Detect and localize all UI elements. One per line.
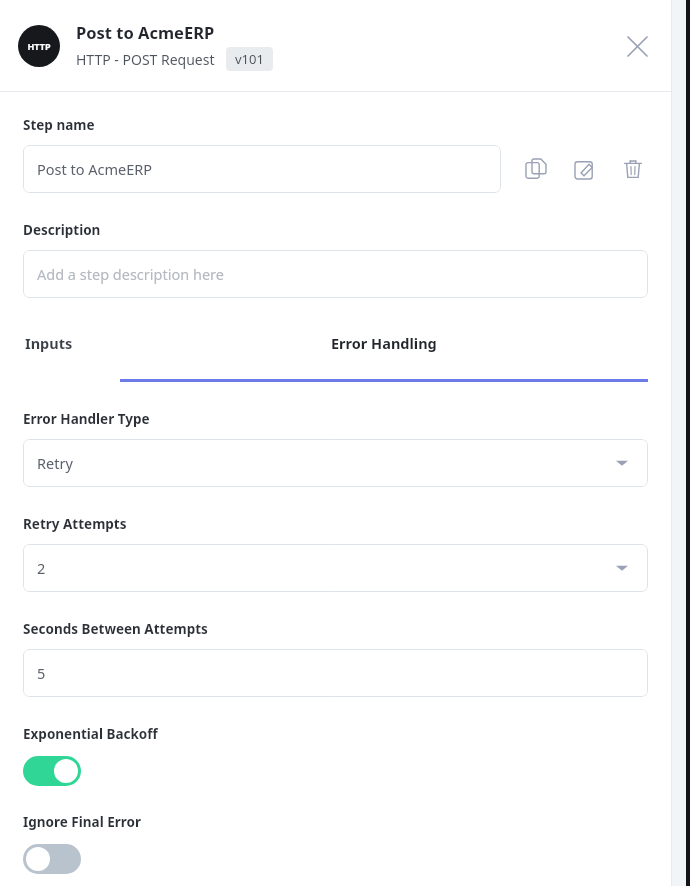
button[interactable]: Toggle on: [23, 756, 81, 786]
button[interactable]: Inputs: [23, 329, 77, 382]
staticText: Step name: [23, 116, 95, 134]
button[interactable]: Retry: [23, 439, 648, 487]
staticText: Retry Attempts: [23, 515, 127, 533]
staticText: Post to AcmeERP: [76, 21, 215, 43]
staticText: Exponential Backoff: [23, 725, 158, 743]
staticText: Retry: [37, 453, 73, 473]
staticText: Add a step description here: [37, 264, 224, 284]
staticText: HTTP - POST Request: [76, 50, 215, 69]
staticText: Description: [23, 221, 101, 239]
staticText: Error Handling: [331, 333, 437, 353]
button[interactable]: Edit: [568, 152, 602, 186]
staticText: Inputs: [25, 333, 73, 353]
staticText: 2: [37, 558, 46, 578]
staticText: Error Handler Type: [23, 410, 150, 428]
staticText: Seconds Between Attempts: [23, 620, 208, 638]
button[interactable]: 2: [23, 544, 648, 592]
staticText: Ignore Final Error: [23, 813, 142, 831]
button[interactable]: 5: [23, 649, 648, 697]
button[interactable]: Add a step description here: [23, 250, 648, 298]
button[interactable]: Close: [617, 26, 657, 66]
staticText: Post to AcmeERP: [37, 159, 153, 179]
staticText: 5: [37, 663, 46, 683]
button[interactable]: Toggle off: [23, 844, 81, 874]
button[interactable]: Post to AcmeERP: [23, 145, 501, 193]
button[interactable]: Duplicate: [519, 152, 553, 186]
button[interactable]: Delete: [617, 152, 648, 186]
staticText: v101: [235, 50, 264, 68]
staticText: HTTP: [27, 40, 51, 52]
button[interactable]: Error Handling: [120, 329, 648, 382]
